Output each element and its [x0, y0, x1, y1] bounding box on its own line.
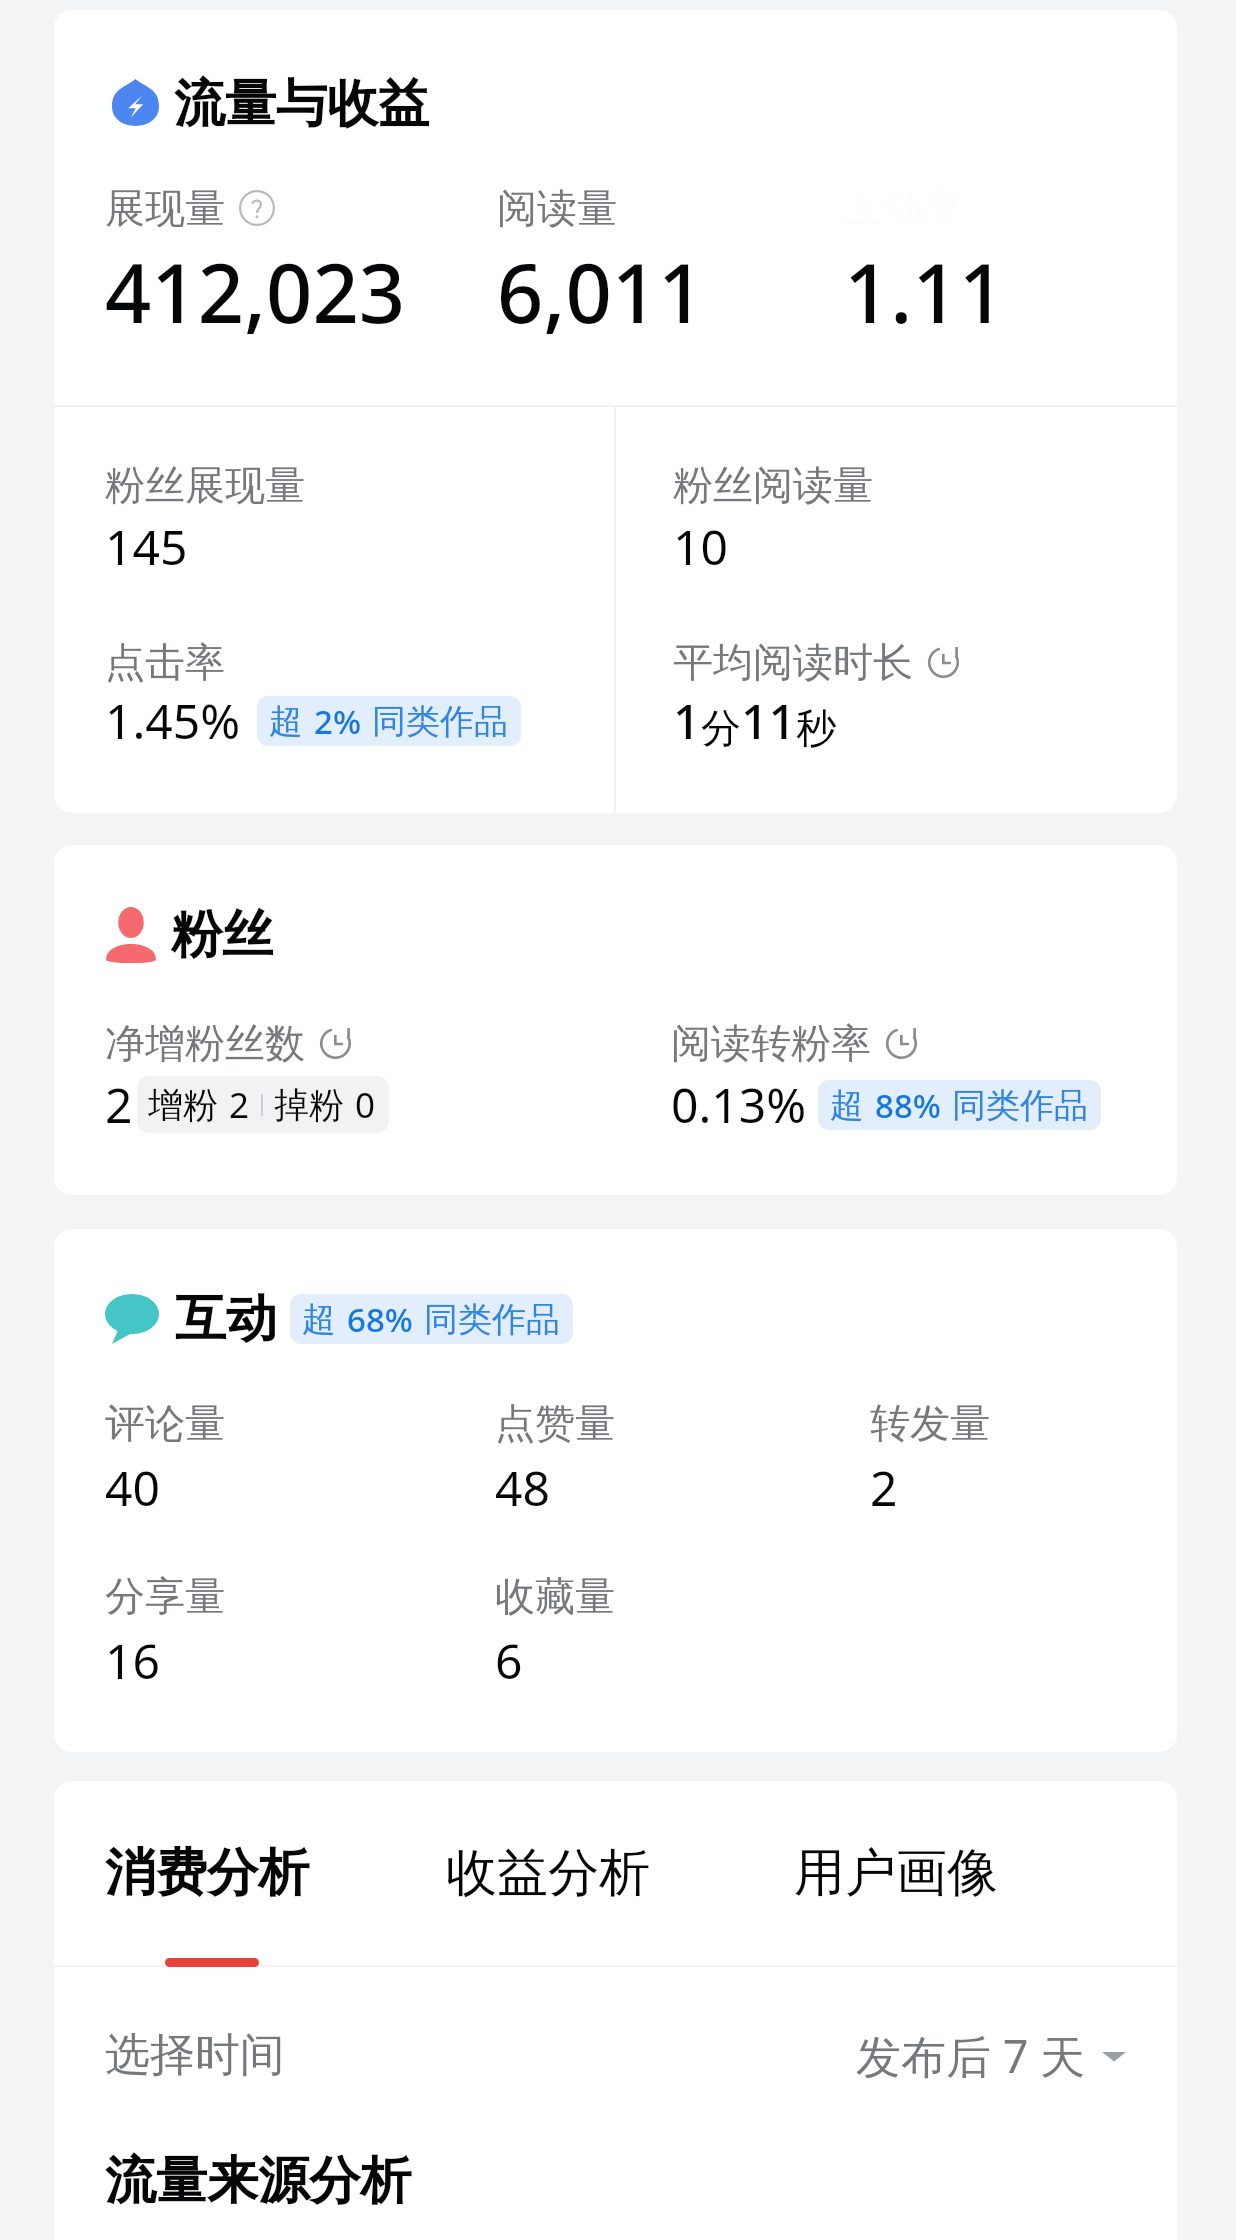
button[interactable]: 超	[257, 696, 521, 746]
staticText: 0.13%	[671, 1072, 807, 1137]
staticText: 点击率	[105, 637, 225, 687]
staticText: 1.45%	[105, 688, 241, 753]
staticText: 超	[302, 1298, 336, 1341]
staticText: 同类作品	[424, 1298, 560, 1341]
staticText: 阅读量	[497, 183, 617, 233]
staticText: 净增粉丝数	[105, 1018, 305, 1068]
staticText: 增粉	[148, 1083, 218, 1127]
button[interactable]: 发布后 7 天	[856, 2025, 1126, 2086]
staticText: 粉丝	[171, 903, 273, 967]
staticText: 16	[105, 1628, 160, 1693]
button[interactable]: 收益分析	[446, 1841, 794, 1905]
button[interactable]: 帮助说明	[239, 190, 275, 226]
button[interactable]: 历史数据	[926, 645, 961, 680]
staticText: 转发量	[870, 1398, 990, 1448]
staticText: 发布后 7 天	[856, 2025, 1086, 2086]
staticText: 1	[673, 688, 701, 753]
staticText: 2	[229, 1081, 250, 1129]
staticText: 收益分析	[446, 1841, 650, 1905]
staticText: 选择时间	[105, 2027, 285, 2084]
button[interactable]: 历史数据	[884, 1026, 919, 1061]
button[interactable]: 历史数据	[318, 1026, 353, 1061]
staticText: 展现量	[105, 183, 225, 233]
staticText: 用户画像	[794, 1841, 998, 1905]
staticText: 412,023	[105, 236, 406, 346]
staticText: 流量与收益	[174, 72, 429, 136]
staticText: 评论量	[105, 1398, 225, 1448]
staticText: 超	[269, 700, 303, 743]
button[interactable]: 超	[290, 1294, 573, 1344]
button[interactable]: 增粉	[137, 1076, 389, 1133]
staticText: 同类作品	[372, 700, 508, 743]
staticText: 145	[105, 514, 188, 579]
staticText: 超	[830, 1084, 864, 1127]
staticText: 0	[355, 1081, 376, 1129]
staticText: 同类作品	[952, 1084, 1088, 1127]
staticText: 2	[105, 1072, 133, 1137]
button[interactable]: 消费分析	[105, 1841, 446, 1905]
staticText: 流量来源分析	[105, 2149, 411, 2213]
staticText: 分享量	[105, 1571, 225, 1621]
staticText: 10	[673, 514, 728, 579]
staticText: 点赞量	[495, 1398, 615, 1448]
staticText: 40	[105, 1455, 160, 1520]
staticText: 2%	[314, 699, 361, 744]
staticText: 秒	[796, 703, 836, 753]
staticText: 分	[701, 703, 741, 753]
staticText: 2	[870, 1455, 898, 1520]
staticText: 11	[741, 688, 796, 753]
staticText: 平均阅读时长	[673, 637, 913, 687]
staticText: 6	[495, 1628, 523, 1693]
staticText: 68%	[347, 1297, 413, 1342]
staticText: 掉粉	[274, 1083, 344, 1127]
button[interactable]: 用户画像	[794, 1841, 998, 1905]
staticText: 消费分析	[105, 1841, 309, 1905]
staticText: 粉丝阅读量	[673, 460, 873, 510]
staticText: 阅读转粉率	[671, 1018, 871, 1068]
button[interactable]: 超	[818, 1080, 1101, 1130]
staticText: 48	[495, 1455, 550, 1520]
staticText: 6,011	[497, 236, 705, 346]
staticText: 互动	[175, 1287, 277, 1351]
staticText: 1.11	[844, 236, 1006, 346]
staticText: 粉丝展现量	[105, 460, 305, 510]
staticText: 收藏量	[495, 1571, 615, 1621]
staticText: 88%	[875, 1083, 941, 1128]
